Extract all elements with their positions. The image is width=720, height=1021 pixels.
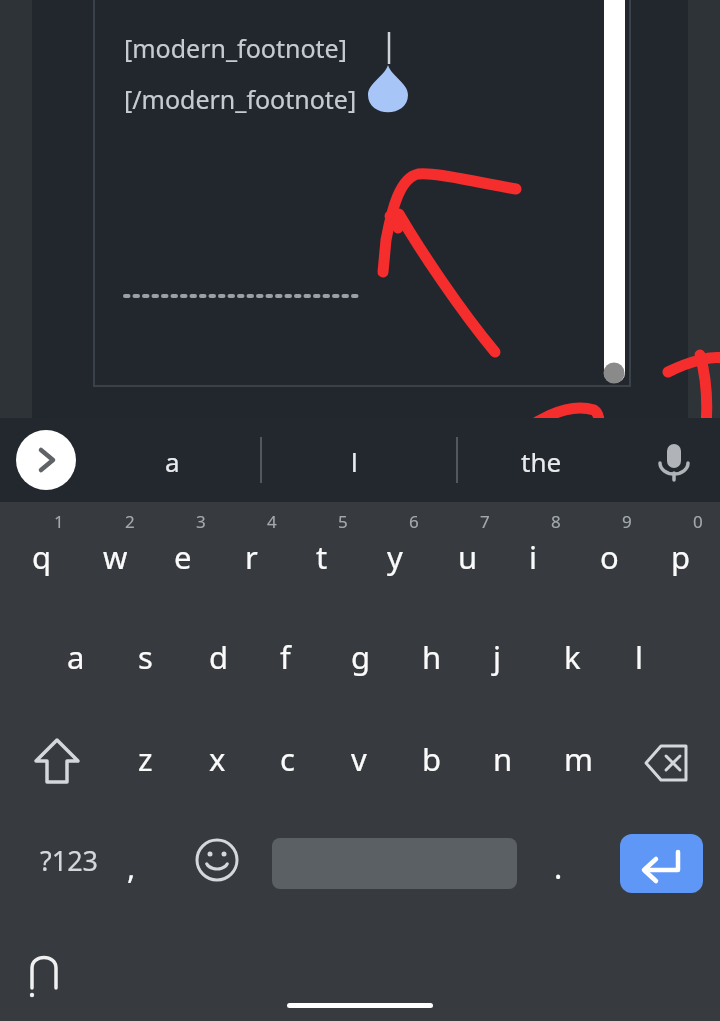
staticText: m: [564, 738, 593, 780]
button[interactable]: Emoji: [186, 832, 248, 894]
button[interactable]: u: [436, 526, 496, 588]
staticText: w: [103, 536, 128, 578]
staticText: a: [165, 444, 180, 479]
button[interactable]: Shift: [22, 730, 92, 794]
staticText: the: [521, 444, 562, 479]
button[interactable]: d: [187, 626, 247, 688]
button[interactable]: Voice input: [645, 432, 701, 488]
staticText: u: [458, 536, 478, 578]
staticText: 1: [54, 510, 64, 533]
staticText: 7: [480, 510, 490, 533]
staticText: ?123: [40, 842, 99, 879]
staticText: i: [529, 536, 537, 578]
button[interactable]: 4: [245, 500, 305, 562]
button[interactable]: Backspace: [628, 734, 698, 792]
staticText: t: [316, 536, 328, 578]
staticText: r: [245, 536, 258, 578]
button[interactable]: 3: [174, 500, 234, 562]
button[interactable]: 9: [600, 500, 660, 562]
button[interactable]: c: [258, 728, 318, 790]
staticText: l: [635, 636, 643, 678]
button[interactable]: r: [223, 526, 283, 588]
staticText: s: [138, 636, 153, 678]
staticText: o: [600, 536, 619, 578]
button[interactable]: k: [542, 626, 602, 688]
staticText: f: [280, 636, 291, 678]
button[interactable]: y: [365, 526, 425, 588]
staticText: 8: [551, 510, 561, 533]
button[interactable]: v: [329, 728, 389, 790]
button[interactable]: l: [613, 626, 673, 688]
button[interactable]: p: [649, 526, 709, 588]
button[interactable]: .: [542, 832, 604, 894]
staticText: g: [351, 636, 371, 678]
button[interactable]: m: [542, 728, 602, 790]
staticText: a: [67, 636, 85, 678]
staticText: d: [209, 636, 229, 678]
button[interactable]: x: [187, 728, 247, 790]
button[interactable]: i: [507, 526, 567, 588]
staticText: ,: [127, 846, 136, 888]
button[interactable]: g: [329, 626, 389, 688]
button[interactable]: ?123: [10, 832, 120, 894]
button[interactable]: 5: [316, 500, 376, 562]
staticText: h: [422, 636, 442, 678]
staticText: z: [138, 738, 153, 780]
staticText: b: [422, 738, 442, 780]
staticText: 5: [338, 510, 348, 533]
button[interactable]: Expand suggestions: [16, 430, 76, 490]
button[interactable]: q: [10, 526, 70, 588]
staticText: j: [493, 636, 501, 678]
button[interactable]: 2: [103, 500, 163, 562]
staticText: q: [32, 536, 52, 578]
staticText: [modern_footnote]: [124, 31, 347, 65]
button[interactable]: n: [471, 728, 531, 790]
staticText: e: [174, 536, 192, 578]
button[interactable]: w: [81, 526, 141, 588]
button[interactable]: e: [152, 526, 212, 588]
button[interactable]: t: [294, 526, 354, 588]
button[interactable]: j: [471, 626, 531, 688]
button[interactable]: 0: [671, 500, 720, 562]
staticText: 3: [196, 510, 206, 533]
staticText: 0: [693, 510, 703, 533]
button[interactable]: 1: [32, 500, 92, 562]
staticText: [/modern_footnote]: [124, 82, 357, 116]
button[interactable]: h: [400, 626, 460, 688]
button[interactable]: a: [45, 626, 105, 688]
staticText: 6: [409, 510, 419, 533]
button[interactable]: ,: [112, 832, 182, 894]
staticText: c: [280, 738, 295, 780]
staticText: k: [564, 636, 581, 678]
button[interactable]: o: [578, 526, 638, 588]
button[interactable]: 7: [458, 500, 518, 562]
staticText: y: [387, 536, 403, 578]
staticText: n: [493, 738, 513, 780]
staticText: 4: [267, 510, 277, 533]
button[interactable]: l: [308, 432, 408, 488]
staticText: p: [671, 536, 691, 578]
button[interactable]: 8: [529, 500, 589, 562]
staticText: l: [351, 444, 358, 479]
button[interactable]: f: [258, 626, 318, 688]
button[interactable]: [modern_footnote]: [124, 31, 347, 65]
staticText: 9: [622, 510, 632, 533]
staticText: x: [209, 738, 226, 780]
button[interactable]: a: [122, 432, 222, 488]
button[interactable]: 6: [387, 500, 447, 562]
button[interactable]: b: [400, 728, 460, 790]
button[interactable]: s: [116, 626, 176, 688]
button[interactable]: z: [116, 728, 176, 790]
staticText: 2: [125, 510, 135, 533]
button[interactable]: the: [492, 432, 592, 488]
staticText: v: [351, 738, 367, 780]
staticText: .: [554, 846, 563, 888]
button[interactable]: Back: [22, 946, 78, 998]
button[interactable]: Enter: [620, 834, 703, 893]
